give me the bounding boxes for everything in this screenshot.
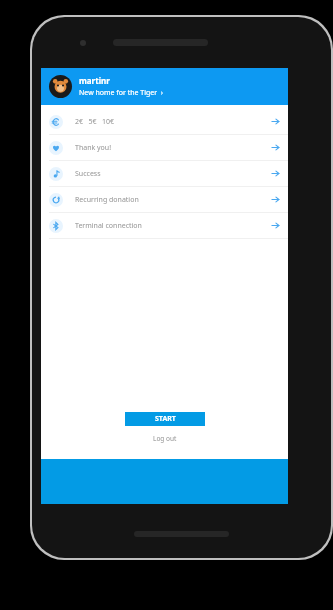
staticText: START	[155, 414, 176, 424]
button[interactable]: martinr	[41, 68, 288, 105]
button[interactable]: Terminal connection	[41, 213, 288, 239]
button[interactable]: Thank you!	[41, 135, 288, 161]
other: Open Terminal connection	[271, 221, 280, 230]
staticText: martinr	[79, 75, 110, 86]
button[interactable]: 2€ 5€ 10€	[41, 109, 288, 135]
staticText: Recurring donation	[75, 195, 139, 205]
button[interactable]: Log out	[147, 432, 183, 445]
other: Open Thank you!	[271, 143, 280, 152]
staticText: Terminal connection	[75, 221, 142, 231]
button[interactable]: START	[125, 412, 205, 426]
button[interactable]: Recurring donation	[41, 187, 288, 213]
staticText: 2€ 5€ 10€	[75, 117, 114, 127]
other: Open Success	[271, 169, 280, 178]
staticText: Success	[75, 169, 101, 179]
staticText: New home for the Tiger ›	[79, 88, 163, 98]
staticText: Thank you!	[75, 143, 112, 153]
other: Open 2€ 5€ 10€	[271, 117, 280, 126]
button[interactable]: Success	[41, 161, 288, 187]
other: Open Recurring donation	[271, 195, 280, 204]
staticText: Log out	[153, 434, 177, 443]
